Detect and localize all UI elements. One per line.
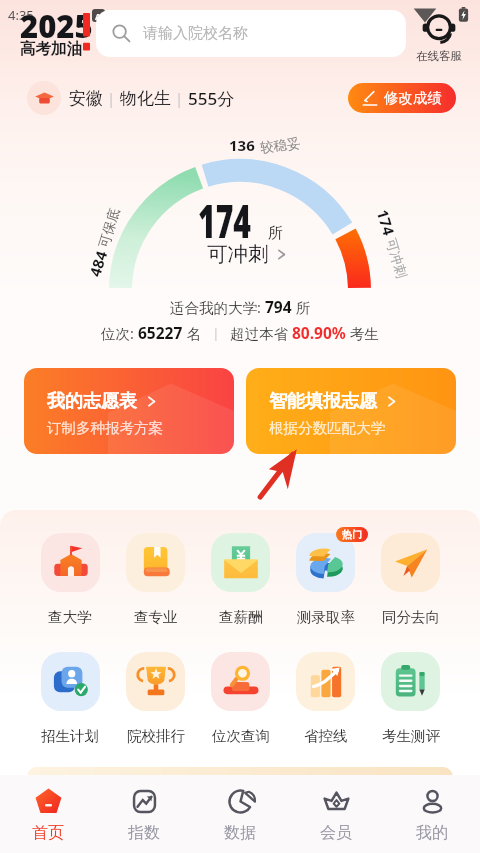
- staticText: |: [202, 324, 230, 342]
- button[interactable]: 智能填报志愿: [246, 368, 456, 454]
- button[interactable]: 请输入院校名称: [96, 10, 406, 57]
- button[interactable]: 修改成绩: [348, 83, 456, 113]
- staticText: 指数: [128, 823, 160, 843]
- staticText: 位次查询: [212, 727, 270, 745]
- button[interactable]: 查专业: [113, 533, 198, 626]
- button[interactable]: 考生测评: [368, 652, 453, 745]
- button[interactable]: 我的志愿表: [24, 368, 234, 454]
- staticText: 高考加油: [20, 39, 82, 59]
- staticText: 安徽: [69, 88, 103, 109]
- staticText: 查薪酬: [219, 608, 263, 626]
- staticText: 名: [183, 323, 202, 343]
- staticText: 4:35: [8, 6, 34, 24]
- button[interactable]: 同分去向: [368, 533, 453, 626]
- staticText: 物化生: [120, 88, 171, 109]
- button[interactable]: 会员: [288, 775, 384, 853]
- staticText: 智能填报志愿: [269, 390, 377, 413]
- button[interactable]: 热门: [283, 533, 368, 626]
- staticText: 可保底: [95, 206, 123, 250]
- staticText: 查专业: [134, 608, 178, 626]
- staticText: 136: [229, 135, 255, 155]
- staticText: 请输入院校名称: [143, 24, 248, 43]
- staticText: 174: [198, 189, 251, 252]
- button[interactable]: 省控线: [283, 652, 368, 745]
- button[interactable]: 查大学: [27, 533, 113, 626]
- button[interactable]: 查薪酬: [198, 533, 283, 626]
- staticText: 174: [373, 207, 399, 238]
- button[interactable]: 我的: [384, 775, 480, 853]
- staticText: 80.90%: [292, 322, 346, 343]
- staticText: 查大学: [48, 608, 92, 626]
- staticText: 首页: [32, 823, 64, 843]
- staticText: A: [95, 10, 102, 22]
- staticText: 适合我的大学:: [170, 297, 265, 317]
- staticText: 2025: [20, 5, 93, 39]
- button[interactable]: 院校排行: [113, 652, 198, 745]
- staticText: |: [171, 88, 188, 108]
- staticText: 同分去向: [382, 608, 440, 626]
- staticText: 热门: [342, 528, 362, 541]
- staticText: 根据分数匹配大学: [269, 419, 385, 437]
- staticText: 我的: [416, 823, 448, 843]
- button[interactable]: 指数: [96, 775, 192, 853]
- staticText: 省控线: [304, 727, 348, 745]
- staticText: 测录取率: [297, 608, 355, 626]
- staticText: 在线客服: [416, 49, 462, 63]
- staticText: 超过本省: [230, 323, 292, 343]
- staticText: 数据: [224, 823, 256, 843]
- staticText: 794: [265, 296, 292, 317]
- staticText: 院校排行: [127, 727, 185, 745]
- button[interactable]: 数据: [192, 775, 288, 853]
- staticText: 所: [292, 297, 311, 317]
- staticText: 修改成绩: [384, 89, 442, 107]
- staticText: 招生计划: [41, 727, 99, 745]
- staticText: 可冲刺: [207, 241, 269, 267]
- button[interactable]: 招生计划: [27, 652, 113, 745]
- staticText: 考生测评: [382, 727, 440, 745]
- staticText: 订制多种报考方案: [47, 419, 163, 437]
- staticText: 所: [268, 224, 283, 243]
- button[interactable]: 在线客服: [409, 11, 469, 63]
- staticText: 会员: [320, 823, 352, 843]
- staticText: 65227: [138, 322, 183, 343]
- staticText: 555分: [188, 87, 235, 110]
- button[interactable]: 位次查询: [198, 652, 283, 745]
- staticText: 考生: [346, 323, 379, 343]
- staticText: 可冲刺: [382, 236, 410, 281]
- staticText: 484: [85, 248, 111, 279]
- staticText: |: [103, 88, 120, 108]
- staticText: 较稳妥: [259, 135, 302, 156]
- staticText: 位次:: [101, 323, 138, 343]
- button[interactable]: 首页: [0, 775, 96, 853]
- staticText: 我的志愿表: [47, 390, 137, 413]
- button[interactable]: [27, 767, 453, 781]
